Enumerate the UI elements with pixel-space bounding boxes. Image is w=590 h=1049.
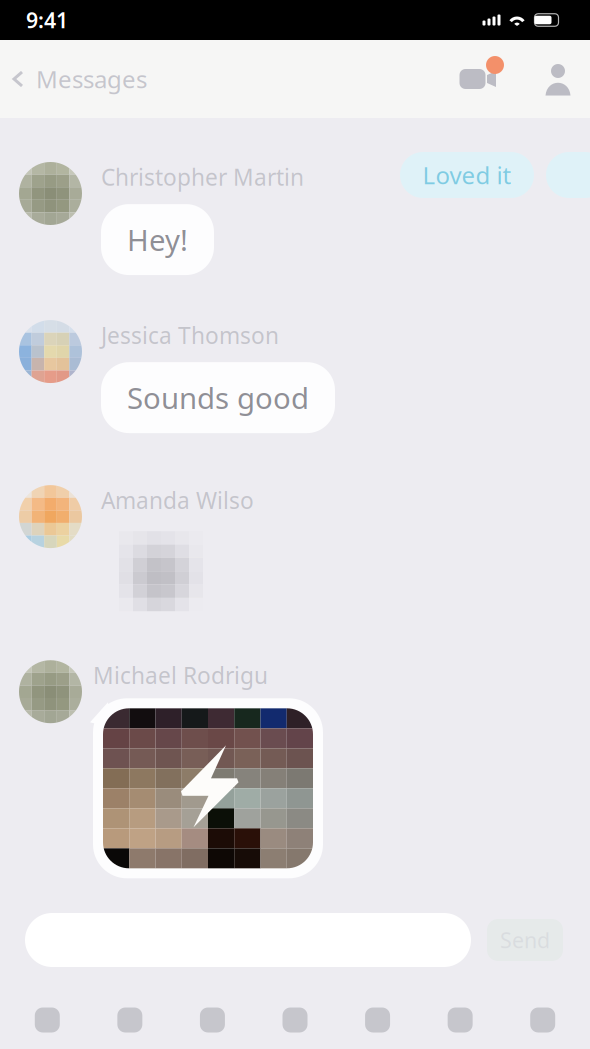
- staticText: Sounds good: [127, 378, 309, 417]
- staticText: Messages: [36, 63, 147, 95]
- staticText: 9:41: [26, 6, 68, 34]
- staticText: Christopher Martin: [101, 162, 304, 192]
- button[interactable]: More reactions: [546, 152, 590, 198]
- staticText: Michael Rodrigu: [93, 660, 268, 690]
- button[interactable]: Profile: [528, 56, 588, 102]
- button[interactable]: Loved it: [400, 152, 534, 198]
- button[interactable]: App 3: [171, 995, 254, 1045]
- staticText: Amanda Wilso: [101, 485, 254, 515]
- staticText: Send: [500, 926, 550, 954]
- button[interactable]: FaceTime: [448, 56, 508, 102]
- button[interactable]: App 2: [89, 995, 171, 1045]
- button[interactable]: Messages: [0, 49, 147, 109]
- staticText: Jessica Thomson: [101, 320, 279, 350]
- button[interactable]: App 1: [6, 995, 89, 1045]
- button[interactable]: App 4: [254, 995, 336, 1045]
- button[interactable]: App 5: [336, 995, 419, 1045]
- button[interactable]: Send: [487, 919, 563, 961]
- staticText: Hey!: [127, 220, 188, 259]
- button[interactable]: App 6: [419, 995, 501, 1045]
- button[interactable]: App 7: [501, 995, 584, 1045]
- staticText: Loved it: [422, 159, 511, 191]
